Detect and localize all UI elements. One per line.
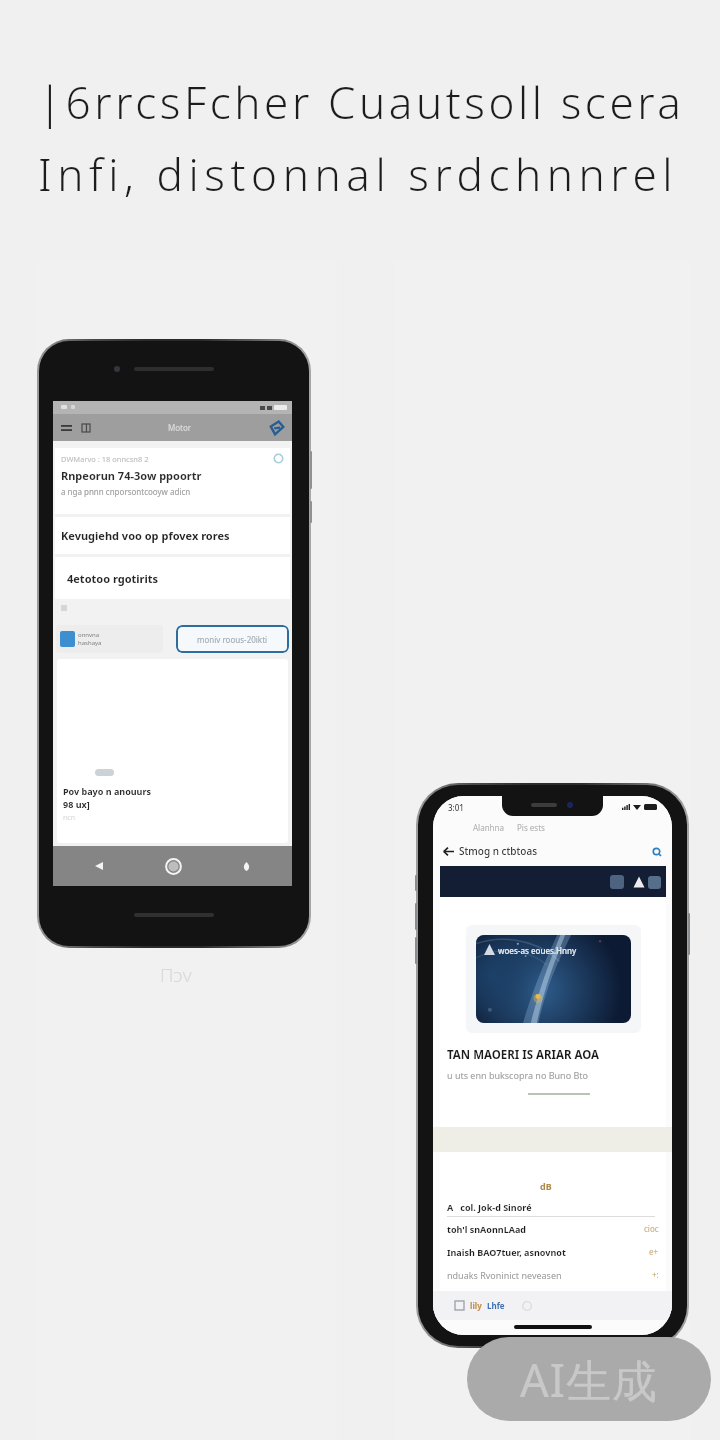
- staticText: woes-as eoues.Hnny: [498, 945, 577, 956]
- staticText: moniv roous-20ikti: [197, 634, 268, 645]
- button[interactable]: Camera: [648, 876, 661, 889]
- staticText: Kevugiehd voo op pfovex rores: [61, 528, 230, 543]
- button[interactable]: woes-as eoues.Hnny: [440, 897, 666, 1127]
- button[interactable]: toh'l snAonnLAad: [440, 1217, 666, 1240]
- staticText: Pis ests: [517, 822, 545, 833]
- button[interactable]: Back: [89, 856, 109, 876]
- staticText: |6rrcsFcher Cuautsoll scera: [38, 72, 685, 132]
- staticText: 98 ux]: [63, 798, 90, 810]
- staticText: A col. Jok-d Sinoré: [447, 1201, 532, 1213]
- button[interactable]: 4etotoo rgotirits: [55, 557, 290, 599]
- staticText: Inaish BAO7tuer, asnovnot: [447, 1246, 566, 1258]
- button[interactable]: A col. Jok-d Sinoré: [440, 1197, 666, 1217]
- button[interactable]: Back: [440, 843, 456, 859]
- staticText: e+: [649, 1246, 659, 1257]
- button[interactable]: nduaks Rvoninict neveasen: [440, 1263, 666, 1286]
- staticText: +:: [652, 1269, 659, 1280]
- button[interactable]: Inaish BAO7tuer, asnovnot: [440, 1240, 666, 1263]
- button[interactable]: Photos: [610, 875, 624, 889]
- staticText: onnvna: [78, 631, 100, 639]
- button[interactable]: Recent apps: [236, 856, 256, 876]
- staticText: Stmog n ctbtoas: [459, 844, 538, 858]
- button[interactable]: onnvna: [56, 625, 163, 653]
- button[interactable]: App logo: [268, 419, 286, 437]
- button[interactable]: Home tab: [455, 1301, 464, 1310]
- staticText: lily: [470, 1300, 482, 1311]
- staticText: dB: [540, 1180, 552, 1192]
- staticText: Motor: [168, 422, 192, 433]
- staticText: nduaks Rvoninict neveasen: [447, 1269, 562, 1281]
- staticText: Пɔv: [160, 962, 192, 988]
- staticText: a nga pnnn cnporsontcooyw adicn: [61, 486, 191, 497]
- staticText: cioc: [644, 1223, 659, 1234]
- staticText: Rnpeorun 74-3ow ppoortr: [61, 468, 202, 483]
- button[interactable]: Alerts: [632, 875, 646, 889]
- staticText: AI生成: [520, 1349, 659, 1410]
- staticText: 4etotoo rgotirits: [67, 571, 159, 586]
- staticText: hashaya: [78, 639, 102, 647]
- staticText: Pov bayo n anouurs: [63, 785, 151, 797]
- staticText: TAN MAOERI IS ARIAR AOA: [447, 1047, 600, 1063]
- button[interactable]: DWMarvo : 18 onncsn8 2: [55, 448, 290, 514]
- staticText: 3:01: [448, 802, 464, 813]
- staticText: DWMarvo : 18 onncsn8 2: [61, 454, 149, 464]
- button[interactable]: Search: [649, 844, 663, 858]
- button[interactable]: Pov bayo n anouurs: [57, 659, 288, 843]
- staticText: Alanhna: [473, 822, 504, 833]
- button[interactable]: Home: [160, 853, 186, 879]
- staticText: Lhfe: [487, 1300, 505, 1311]
- staticText: Infi, distonnal srdchnnrel: [38, 144, 679, 204]
- button[interactable]: Menu: [59, 420, 74, 435]
- staticText: toh'l snAonnLAad: [447, 1223, 526, 1235]
- button[interactable]: moniv roous-20ikti: [176, 625, 289, 653]
- button[interactable]: Grid view: [78, 420, 93, 435]
- staticText: ncn: [63, 813, 76, 823]
- button[interactable]: Kevugiehd voo op pfovex rores: [55, 517, 290, 554]
- staticText: u uts enn bukscopra no Buno Bto: [447, 1069, 588, 1081]
